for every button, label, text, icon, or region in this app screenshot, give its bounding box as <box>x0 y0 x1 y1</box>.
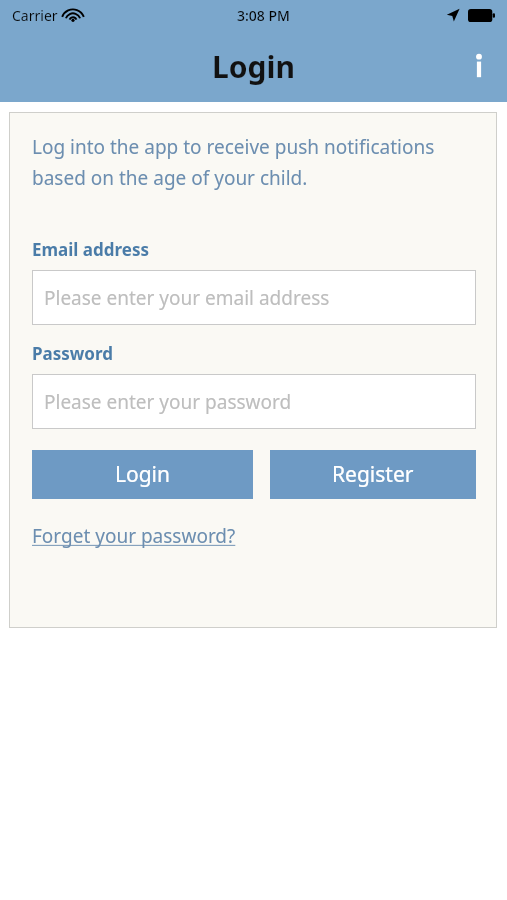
staticText: Forget your password? <box>32 523 236 549</box>
staticText: 3:08 PM <box>237 6 290 25</box>
button[interactable]: Info <box>451 30 507 102</box>
button[interactable]: Please enter your email address <box>32 270 476 325</box>
button[interactable]: Login <box>32 450 253 499</box>
staticText: Register <box>332 460 414 489</box>
staticText: Please enter your email address <box>44 285 330 311</box>
staticText: Log into the app to receive push notific… <box>32 134 476 190</box>
staticText: Login <box>212 46 295 87</box>
staticText: Please enter your password <box>44 389 292 415</box>
staticText: Email address <box>32 238 149 261</box>
button[interactable]: Please enter your password <box>32 374 476 429</box>
button[interactable]: Forget your password? <box>32 523 236 549</box>
button[interactable]: Register <box>270 450 476 499</box>
staticText: Password <box>32 342 113 365</box>
staticText: Carrier <box>12 6 58 25</box>
staticText: Login <box>115 460 171 489</box>
